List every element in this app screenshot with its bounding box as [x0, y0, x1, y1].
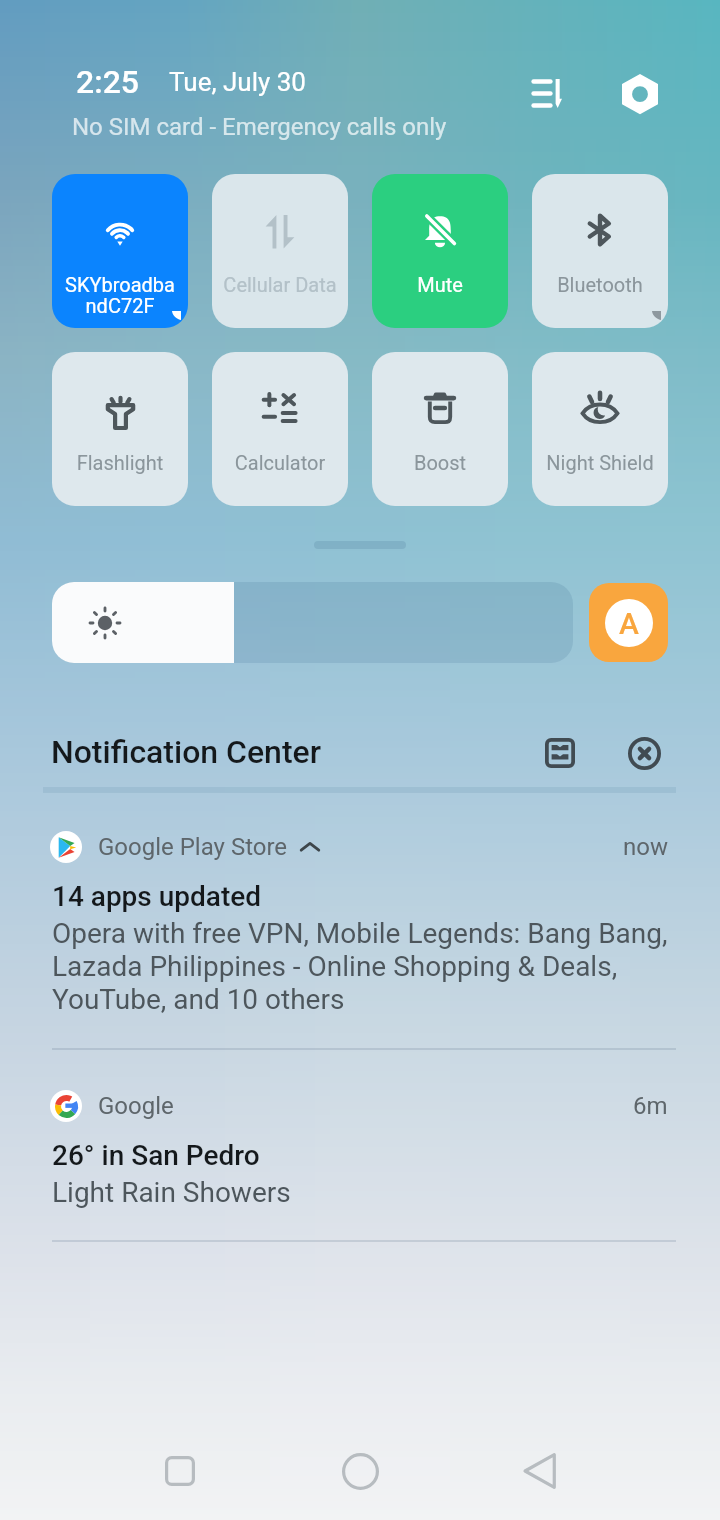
button[interactable]: SKYbroadba ndC72F: [52, 174, 188, 328]
staticText: 14 apps updated: [52, 880, 262, 913]
button[interactable]: Boost: [372, 352, 508, 506]
staticText: Cellular Data: [212, 273, 348, 296]
button[interactable]: Home: [320, 1431, 400, 1511]
staticText: A: [619, 606, 639, 641]
staticText: Light Rain Showers: [52, 1176, 291, 1209]
staticText: Bluetooth: [532, 273, 668, 296]
button[interactable]: Calculator: [212, 352, 348, 506]
staticText: SKYbroadba ndC72F: [52, 273, 188, 318]
staticText: now: [623, 833, 668, 861]
button[interactable]: Bluetooth: [532, 174, 668, 328]
button[interactable]: Settings: [610, 62, 670, 122]
button[interactable]: Sort notifications: [517, 62, 577, 122]
button[interactable]: Clear all notifications: [615, 724, 673, 782]
button[interactable]: Google: [0, 1081, 720, 1209]
staticText: Boost: [372, 451, 508, 474]
button[interactable]: Auto brightness: [589, 583, 668, 662]
button[interactable]: Notification settings: [531, 724, 589, 782]
staticText: Flashlight: [52, 451, 188, 474]
button[interactable]: Google Play Store: [0, 822, 720, 1016]
button[interactable]: Night Shield: [532, 352, 668, 506]
staticText: Mute: [372, 273, 508, 296]
button[interactable]: Mute: [372, 174, 508, 328]
staticText: Opera with free VPN, Mobile Legends: Ban…: [52, 917, 668, 1016]
staticText: Tue, July 30: [169, 67, 306, 97]
staticText: 6m: [633, 1092, 668, 1120]
button[interactable]: Cellular Data: [212, 174, 348, 328]
staticText: Night Shield: [532, 451, 668, 474]
staticText: Calculator: [212, 451, 348, 474]
staticText: 26° in San Pedro: [52, 1139, 260, 1172]
button[interactable]: Brightness: [52, 582, 573, 663]
button[interactable]: Back: [500, 1431, 580, 1511]
staticText: 2:25: [76, 63, 139, 101]
staticText: No SIM card - Emergency calls only: [72, 113, 447, 141]
staticText: Google Play Store: [98, 833, 288, 861]
button[interactable]: Flashlight: [52, 352, 188, 506]
button[interactable]: Recents: [140, 1431, 220, 1511]
staticText: Google: [98, 1092, 174, 1120]
staticText: Notification Center: [51, 733, 322, 771]
